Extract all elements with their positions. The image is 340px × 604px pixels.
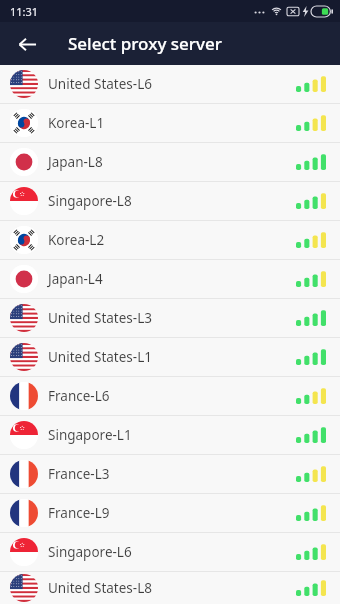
button[interactable]: Japan-L4 (0, 260, 340, 298)
button[interactable]: United States-L8 (0, 572, 340, 604)
staticText: United States-L8 (48, 579, 152, 597)
button[interactable]: France-L9 (0, 494, 340, 532)
staticText: 11:31 (10, 4, 39, 19)
staticText: France-L3 (48, 465, 110, 483)
button[interactable]: Korea-L2 (0, 221, 340, 259)
staticText: Japan-L8 (48, 153, 103, 171)
button[interactable]: Korea-L1 (0, 104, 340, 142)
button[interactable]: Back (10, 27, 44, 61)
button[interactable]: Singapore-L1 (0, 416, 340, 454)
staticText: Singapore-L8 (48, 192, 132, 210)
button[interactable]: Singapore-L8 (0, 182, 340, 220)
button[interactable]: United States-L1 (0, 338, 340, 376)
staticText: Korea-L1 (48, 114, 105, 132)
staticText: France-L6 (48, 387, 110, 405)
button[interactable]: Singapore-L6 (0, 533, 340, 571)
button[interactable]: Japan-L8 (0, 143, 340, 181)
staticText: Japan-L4 (48, 270, 103, 288)
staticText: Select proxy server (68, 32, 222, 55)
staticText: Korea-L2 (48, 231, 105, 249)
button[interactable]: United States-L3 (0, 299, 340, 337)
staticText: United States-L3 (48, 309, 152, 327)
staticText: France-L9 (48, 504, 110, 522)
staticText: United States-L6 (48, 75, 152, 93)
staticText: Singapore-L1 (48, 426, 132, 444)
button[interactable]: United States-L6 (0, 65, 340, 103)
staticText: Singapore-L6 (48, 543, 132, 561)
staticText: United States-L1 (48, 348, 152, 366)
button[interactable]: France-L3 (0, 455, 340, 493)
button[interactable]: France-L6 (0, 377, 340, 415)
